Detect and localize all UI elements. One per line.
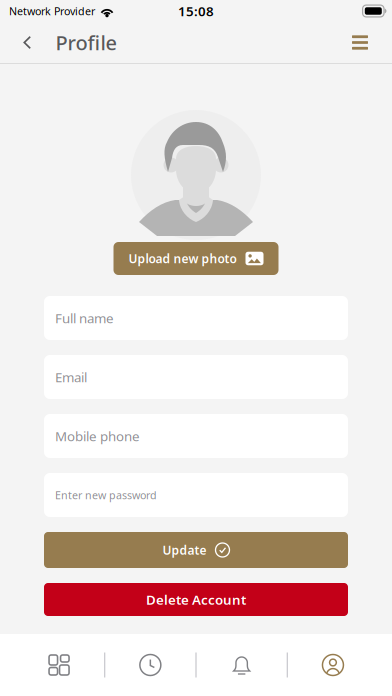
staticText: Delete Account xyxy=(146,591,246,608)
button[interactable]: Dashboard xyxy=(14,634,104,696)
staticText: Full name xyxy=(55,309,114,327)
staticText: 15:08 xyxy=(178,2,214,20)
button[interactable]: Upload new photo xyxy=(113,242,278,275)
staticText: Network Provider xyxy=(9,4,95,18)
staticText: Update xyxy=(162,542,206,558)
staticText: Mobile phone xyxy=(55,427,140,445)
button[interactable]: Menu xyxy=(336,23,392,62)
button[interactable]: History xyxy=(105,634,195,696)
staticText: Email xyxy=(55,368,87,386)
staticText: Profile xyxy=(55,29,116,56)
staticText: Enter new password xyxy=(55,488,157,502)
button[interactable]: Delete Account xyxy=(44,583,348,616)
button[interactable]: Back xyxy=(0,23,55,62)
button[interactable]: Notifications xyxy=(197,634,287,696)
button[interactable]: Update xyxy=(44,532,348,568)
button[interactable]: Profile xyxy=(288,634,378,696)
staticText: Upload new photo xyxy=(128,250,236,266)
